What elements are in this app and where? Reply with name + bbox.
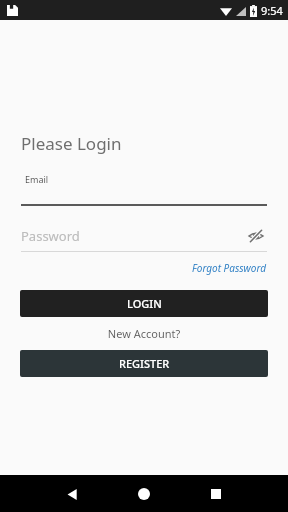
button[interactable]: Recent apps — [201, 479, 231, 509]
button[interactable]: Show password — [245, 225, 267, 247]
button[interactable]: LOGIN — [20, 290, 268, 317]
staticText: Email — [25, 173, 49, 185]
button[interactable]: Password — [21, 225, 267, 252]
staticText: 9:54 — [261, 3, 283, 18]
staticText: New Account? — [0, 326, 288, 341]
staticText: Please Login — [21, 132, 122, 155]
button[interactable]: Home — [129, 479, 159, 509]
staticText: Password — [21, 227, 245, 245]
staticText: REGISTER — [119, 356, 170, 371]
button[interactable]: REGISTER — [20, 350, 268, 377]
button[interactable]: Forgot Password — [192, 261, 267, 275]
staticText: LOGIN — [127, 296, 162, 311]
button[interactable]: Email — [21, 173, 267, 206]
button[interactable]: Back — [57, 479, 87, 509]
